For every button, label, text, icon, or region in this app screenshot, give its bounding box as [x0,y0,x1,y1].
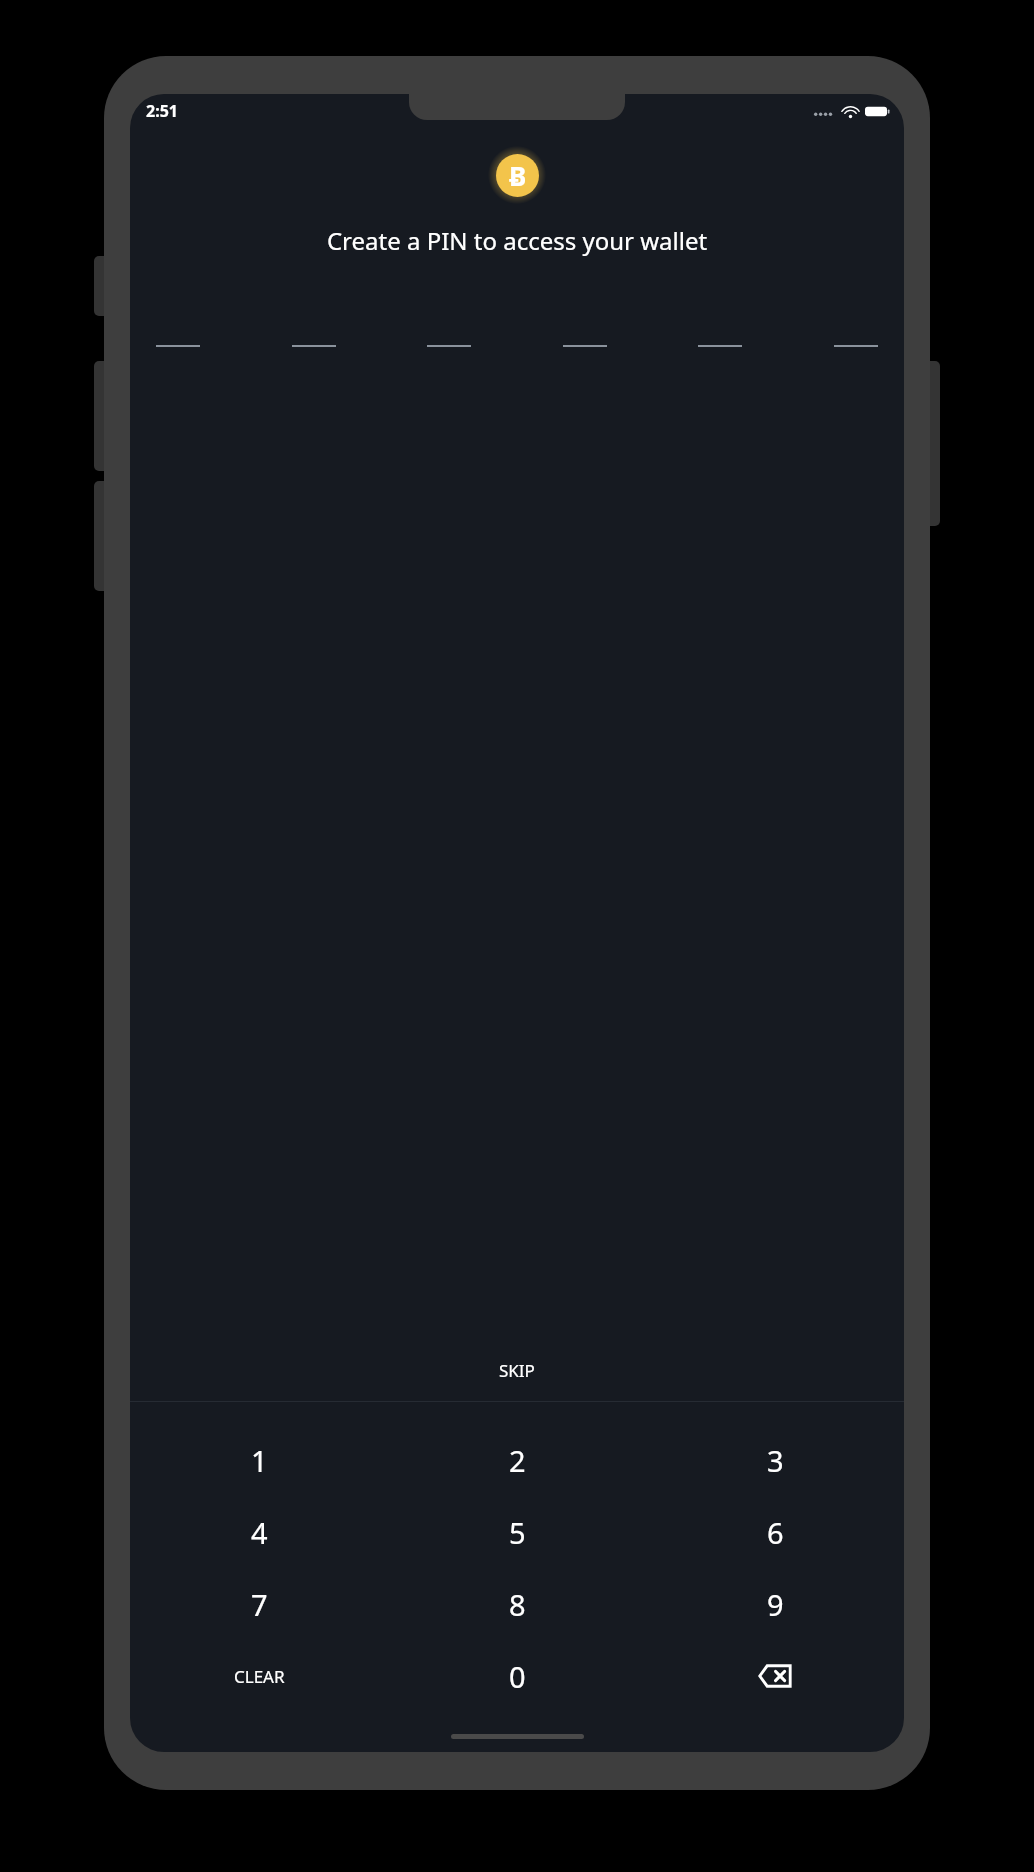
button[interactable]: 9 [646,1568,904,1640]
staticText: Create a PIN to access your wallet [148,224,886,257]
button[interactable]: 8 [388,1568,646,1640]
staticText: 4 [251,1513,268,1552]
button[interactable]: SKIP [130,1339,904,1401]
staticText: SKIP [499,1359,535,1382]
staticText: 9 [767,1585,784,1624]
staticText: 3 [767,1441,784,1480]
staticText: 6 [767,1513,784,1552]
button[interactable]: 5 [388,1496,646,1568]
staticText: Ƀ [509,158,527,193]
button[interactable]: 6 [646,1496,904,1568]
staticText: 5 [509,1513,526,1552]
button[interactable]: CLEAR [130,1640,388,1712]
button[interactable]: 7 [130,1568,388,1640]
staticText: CLEAR [234,1665,285,1688]
staticText: 0 [509,1657,526,1696]
staticText: 1 [251,1441,268,1480]
staticText: 2:51 [146,100,178,122]
staticText: 2 [509,1441,526,1480]
staticText: 7 [251,1585,268,1624]
button[interactable]: 4 [130,1496,388,1568]
button[interactable]: 2 [388,1424,646,1496]
button[interactable]: Backspace [646,1640,904,1712]
button[interactable]: 3 [646,1424,904,1496]
staticText: 8 [509,1585,526,1624]
button[interactable]: 0 [388,1640,646,1712]
button[interactable]: 1 [130,1424,388,1496]
